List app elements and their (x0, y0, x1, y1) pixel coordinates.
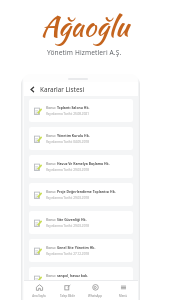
button[interactable]: Ana Sayfa (26, 281, 52, 298)
button[interactable]: Geri (28, 85, 37, 94)
staticText: Havuz Ve Kamelya Başlama Hk. (56, 161, 110, 166)
button[interactable]: Talep Bildir (54, 281, 80, 298)
staticText: Yayınlanma Tarihi: 04.05.2018 (46, 140, 89, 144)
button[interactable]: Konu: (29, 127, 133, 150)
staticText: Konu: (46, 133, 56, 138)
button[interactable]: Menü (110, 281, 136, 298)
staticText: Ağaoğlu (41, 6, 129, 47)
button[interactable]: Konu: (29, 239, 133, 262)
staticText: Konu: (46, 245, 56, 250)
staticText: Kararlar Listesi (40, 85, 85, 93)
staticText: sanpol, havuz bak. (56, 273, 89, 278)
staticText: Konu: (46, 189, 56, 194)
staticText: Yayınlanma Tarihi: 25.08.2021 (46, 112, 89, 116)
staticText: Talep Bildir (60, 294, 75, 298)
staticText: Yayınlanma Tarihi: 27.12.2018 (46, 252, 89, 256)
button[interactable]: Konu: (29, 99, 133, 122)
staticText: Konu: (46, 161, 56, 166)
staticText: Menü (119, 294, 127, 298)
staticText: Toplantı Salonu Hk. (56, 105, 90, 110)
staticText: Ana Sayfa (32, 294, 46, 298)
staticText: Yayınlanma Tarihi: 29.03.2018 (46, 196, 89, 200)
staticText: Konu: (46, 273, 56, 278)
staticText: Konu: (46, 105, 56, 110)
staticText: Yayınlanma Tarihi: 29.03.2018 (46, 224, 89, 228)
staticText: Yayınlanma Tarihi: 29.03.2018 (46, 168, 89, 172)
button[interactable]: Konu: (29, 267, 133, 290)
button[interactable]: Konu: (29, 183, 133, 206)
staticText: Konu: (46, 217, 56, 222)
staticText: Genel Site Yönetim Hk. (56, 245, 96, 250)
staticText: Yönetim Hizmetleri A.Ş. (47, 48, 122, 57)
button[interactable]: WhatsApp (82, 281, 108, 298)
button[interactable]: Konu: (29, 211, 133, 234)
staticText: Yönetim Kurulu Hk. (56, 133, 90, 138)
staticText: Proje Değerlendirme Toplantısı Hk. (56, 189, 116, 194)
button[interactable]: Konu: (29, 155, 133, 178)
staticText: Site Güvenliği Hk. (56, 217, 87, 222)
staticText: WhatsApp (88, 294, 102, 298)
staticText: Yayınlanma Tarihi: 03.12.2018 (46, 280, 89, 284)
